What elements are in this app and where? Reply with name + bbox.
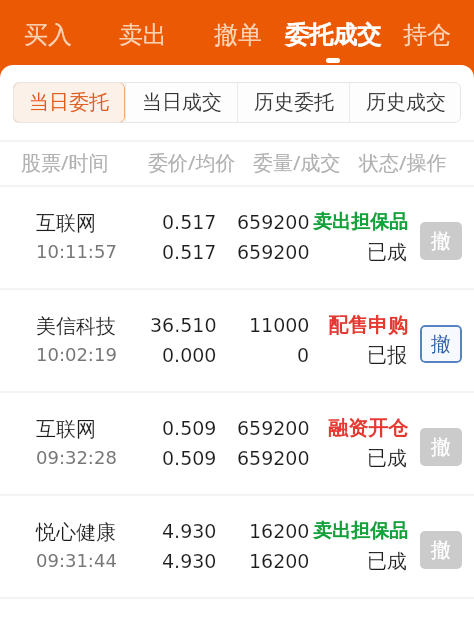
staticText: 16200: [249, 520, 310, 542]
button[interactable]: 委托成交: [285, 0, 380, 62]
staticText: 659200: [237, 417, 310, 439]
staticText: 当日成交: [142, 90, 222, 115]
button[interactable]: 撤单: [420, 531, 462, 569]
button[interactable]: 美信科技: [0, 289, 474, 391]
button[interactable]: 历史委托: [238, 82, 349, 123]
button[interactable]: 撤单: [190, 0, 285, 62]
staticText: 10:02:19: [36, 344, 117, 365]
staticText: 0: [297, 344, 310, 366]
staticText: 撤: [431, 435, 451, 460]
staticText: 撤单: [214, 20, 262, 50]
staticText: 09:32:28: [36, 447, 117, 468]
staticText: 09:31:44: [36, 550, 117, 571]
staticText: 当日委托: [29, 90, 109, 115]
staticText: 配售申购: [328, 313, 408, 338]
button[interactable]: 悦心健康: [0, 495, 474, 597]
staticText: 撤: [431, 332, 451, 357]
staticText: 10:11:57: [36, 241, 117, 262]
button[interactable]: 互联网: [0, 392, 474, 494]
staticText: 撤: [431, 538, 451, 563]
staticText: 0.517: [162, 241, 217, 263]
button[interactable]: 当日委托: [13, 82, 125, 123]
staticText: 4.930: [162, 550, 217, 572]
staticText: 状态/操作: [359, 149, 447, 176]
staticText: 0.509: [162, 417, 217, 439]
staticText: 撤: [431, 229, 451, 254]
button[interactable]: 买入: [0, 0, 95, 62]
staticText: 0.517: [162, 211, 217, 233]
staticText: 悦心健康: [36, 520, 116, 545]
staticText: 已报: [367, 343, 407, 368]
staticText: 11000: [249, 314, 310, 336]
button[interactable]: 持仓: [380, 0, 474, 62]
button[interactable]: 撤单: [420, 325, 462, 363]
staticText: 历史委托: [254, 90, 334, 115]
staticText: 互联网: [36, 211, 96, 236]
button[interactable]: 历史成交: [350, 82, 461, 123]
staticText: 659200: [237, 211, 310, 233]
button[interactable]: 当日成交: [126, 82, 237, 123]
staticText: 16200: [249, 550, 310, 572]
staticText: 融资开仓: [328, 416, 408, 441]
button[interactable]: 撤单: [420, 222, 462, 260]
staticText: 持仓: [403, 20, 451, 50]
staticText: 659200: [237, 447, 310, 469]
staticText: 卖出担保品: [313, 210, 408, 234]
button[interactable]: 互联网: [0, 186, 474, 288]
staticText: 委价/均价: [148, 149, 236, 176]
staticText: 659200: [237, 241, 310, 263]
staticText: 买入: [24, 20, 72, 50]
staticText: 历史成交: [366, 90, 446, 115]
staticText: 已成: [367, 446, 407, 471]
staticText: 互联网: [36, 417, 96, 442]
button[interactable]: 撤单: [420, 428, 462, 466]
staticText: 委托成交: [285, 20, 381, 50]
staticText: 美信科技: [36, 314, 116, 339]
button[interactable]: 卖出: [95, 0, 190, 62]
staticText: 4.930: [162, 520, 217, 542]
staticText: 卖出: [119, 20, 167, 50]
staticText: 36.510: [150, 314, 217, 336]
staticText: 委量/成交: [253, 149, 341, 176]
staticText: 股票/时间: [21, 149, 109, 176]
staticText: 0.000: [162, 344, 217, 366]
staticText: 已成: [367, 240, 407, 265]
staticText: 卖出担保品: [313, 519, 408, 543]
staticText: 0.509: [162, 447, 217, 469]
staticText: 已成: [367, 549, 407, 574]
